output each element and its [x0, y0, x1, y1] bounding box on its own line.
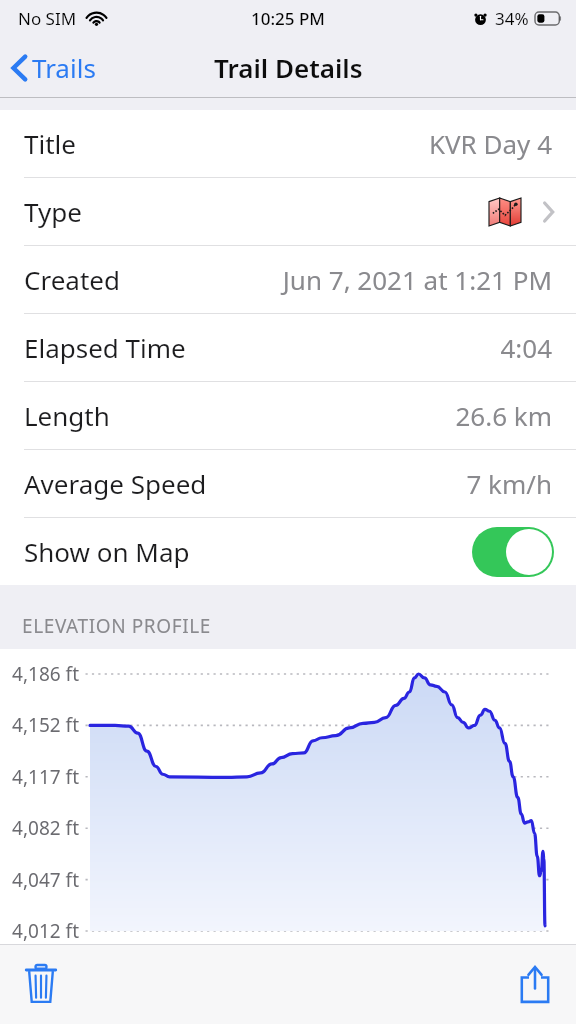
staticText: 4,117 ft — [0, 764, 79, 790]
staticText: 4,186 ft — [0, 661, 79, 687]
staticText: 7 km/h — [466, 466, 552, 501]
staticText: Trails — [32, 50, 96, 85]
staticText: 4,047 ft — [0, 867, 79, 893]
staticText: 10:25 PM — [251, 7, 325, 30]
staticText: Jun 7, 2021 at 1:21 PM — [282, 262, 552, 297]
button[interactable]: Length — [0, 382, 576, 449]
button[interactable]: Delete — [6, 949, 76, 1019]
button[interactable]: Title — [0, 110, 576, 177]
button[interactable]: Average Speed — [0, 450, 576, 517]
button[interactable]: Elapsed Time — [0, 314, 576, 381]
staticText: 4:04 — [500, 330, 552, 365]
button[interactable]: Share — [500, 949, 570, 1019]
staticText: 4,012 ft — [0, 918, 79, 944]
staticText: Average Speed — [24, 466, 207, 501]
staticText: Trail Details — [214, 50, 363, 85]
staticText: Show on Map — [24, 534, 190, 569]
staticText: Elapsed Time — [24, 330, 186, 365]
button[interactable]: Type — [0, 178, 576, 245]
button[interactable]: Show on Map — [0, 518, 576, 585]
staticText: Created — [24, 262, 120, 297]
staticText: Title — [24, 126, 76, 161]
staticText: ELEVATION PROFILE — [22, 613, 211, 639]
staticText: Length — [24, 398, 110, 433]
staticText: 26.6 km — [455, 398, 552, 433]
staticText: Type — [24, 194, 82, 229]
button[interactable]: Show on Map toggle — [472, 527, 554, 577]
staticText: No SIM — [18, 7, 77, 30]
staticText: 4,082 ft — [0, 815, 79, 841]
staticText: 4,152 ft — [0, 712, 79, 738]
button[interactable]: Trails — [0, 42, 108, 93]
staticText: KVR Day 4 — [428, 126, 552, 161]
staticText: 34% — [495, 7, 529, 30]
button[interactable]: Created — [0, 246, 576, 313]
